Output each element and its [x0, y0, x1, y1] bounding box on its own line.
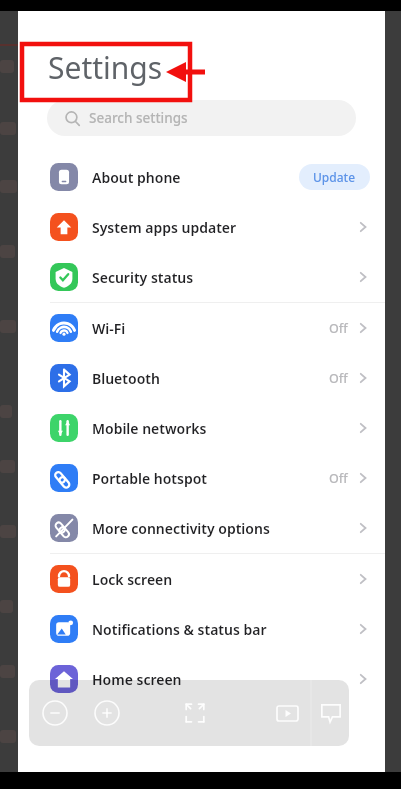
button[interactable]: Home screen	[18, 654, 385, 704]
staticText: Off	[329, 320, 348, 337]
button[interactable]: Mobile networks	[18, 403, 385, 453]
staticText: Portable hotspot	[92, 469, 207, 488]
button[interactable]: Update	[299, 164, 370, 190]
staticText: Security status	[92, 268, 194, 287]
button[interactable]: Zoom in	[81, 687, 133, 739]
staticText: About phone	[92, 168, 181, 187]
button[interactable]: Wi-Fi	[18, 303, 385, 353]
staticText: Mobile networks	[92, 419, 207, 438]
button[interactable]: System apps updater	[18, 202, 385, 252]
staticText: Settings	[48, 47, 163, 88]
staticText: Wi-Fi	[92, 319, 126, 338]
button[interactable]: Comment	[312, 683, 349, 743]
staticText: System apps updater	[92, 218, 237, 237]
staticText: Home screen	[92, 670, 182, 689]
button[interactable]: Video	[263, 689, 311, 737]
button[interactable]: Bluetooth	[18, 353, 385, 403]
button[interactable]: Zoom out	[29, 687, 81, 739]
staticText: Off	[329, 470, 348, 487]
staticText: Off	[329, 370, 348, 387]
button[interactable]: Search settings	[47, 100, 356, 136]
button[interactable]: Fullscreen	[171, 689, 219, 737]
button[interactable]: Notifications & status bar	[18, 604, 385, 654]
button[interactable]: Portable hotspot	[18, 453, 385, 503]
button[interactable]: More connectivity options	[18, 503, 385, 553]
staticText: More connectivity options	[92, 519, 270, 538]
staticText: Search settings	[89, 109, 188, 127]
staticText: Lock screen	[92, 570, 173, 589]
button[interactable]: Security status	[18, 252, 385, 302]
button[interactable]: About phone	[18, 152, 385, 202]
button[interactable]: Lock screen	[18, 554, 385, 604]
staticText: Notifications & status bar	[92, 620, 267, 639]
staticText: Bluetooth	[92, 369, 160, 388]
staticText: Update	[313, 169, 356, 185]
